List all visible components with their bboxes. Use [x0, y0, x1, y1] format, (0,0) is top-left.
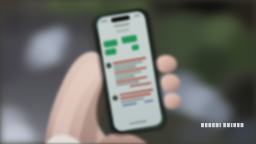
button[interactable]: Hand holding a phone showing a chat conv… — [0, 0, 256, 144]
